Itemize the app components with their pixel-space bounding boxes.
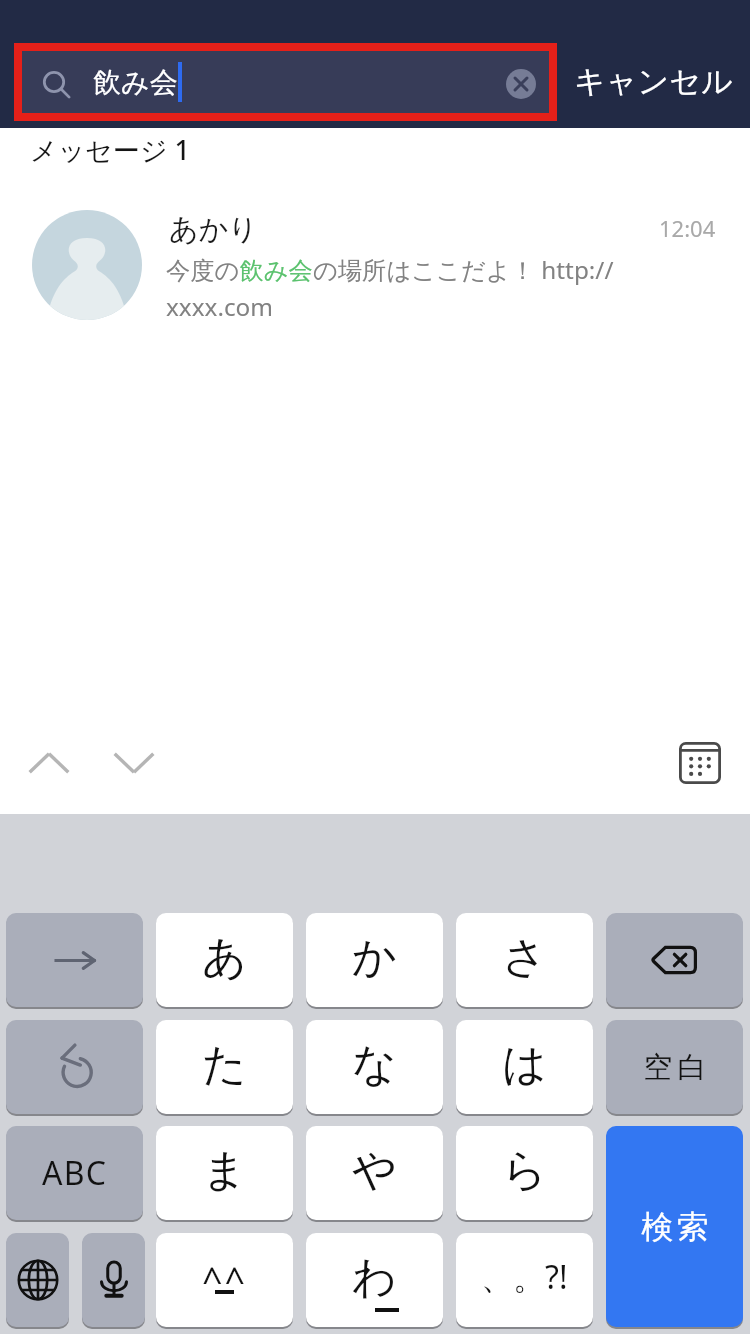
staticText: な: [352, 1037, 398, 1092]
button[interactable]: な: [306, 1020, 443, 1114]
staticText: さ: [502, 930, 548, 985]
staticText: か: [352, 930, 398, 985]
button[interactable]: Next candidate: [6, 913, 143, 1007]
staticText: ABC: [42, 1151, 108, 1195]
button[interactable]: キャンセル: [574, 62, 733, 101]
button[interactable]: Switch keyboard: [6, 1233, 69, 1327]
button[interactable]: ABC: [6, 1126, 143, 1220]
button[interactable]: あ: [156, 913, 293, 1007]
button[interactable]: 検索: [606, 1126, 743, 1327]
button[interactable]: 飲み会: [22, 51, 549, 113]
button[interactable]: Previous result: [18, 732, 80, 794]
button[interactable]: Clear search: [498, 61, 544, 107]
button[interactable]: さ: [456, 913, 593, 1007]
button[interactable]: Calendar: [671, 734, 729, 792]
button[interactable]: 空白: [606, 1020, 743, 1114]
staticText: わ: [352, 1250, 398, 1305]
button[interactable]: は: [456, 1020, 593, 1114]
staticText: ま: [202, 1143, 248, 1198]
staticText: あかり: [169, 211, 259, 248]
staticText: 12:04: [659, 213, 716, 243]
button[interactable]: あかり: [0, 190, 750, 345]
button[interactable]: 、。?!: [456, 1233, 593, 1327]
button[interactable]: Delete: [606, 913, 743, 1007]
button[interactable]: ら: [456, 1126, 593, 1220]
staticText: メッセージ 1: [30, 131, 190, 168]
staticText: た: [202, 1037, 248, 1092]
staticText: や: [352, 1143, 398, 1198]
button[interactable]: Dictation: [82, 1233, 145, 1327]
staticText: 検索: [640, 1207, 710, 1247]
staticText: ら: [502, 1143, 548, 1198]
staticText: ^^: [202, 1256, 248, 1305]
staticText: 空白: [641, 1049, 709, 1086]
button[interactable]: や: [306, 1126, 443, 1220]
button[interactable]: Next result: [103, 732, 165, 794]
button[interactable]: ^^: [156, 1233, 293, 1327]
staticText: キャンセル: [574, 62, 733, 101]
button[interactable]: た: [156, 1020, 293, 1114]
staticText: 今度の飲み会の場所はここだよ！ http://xxxx.com: [166, 253, 636, 323]
staticText: 飲み会: [93, 65, 178, 100]
button[interactable]: Undo: [6, 1020, 143, 1114]
staticText: は: [502, 1037, 548, 1092]
staticText: 、。?!: [481, 1255, 568, 1299]
staticText: あ: [202, 930, 248, 985]
button[interactable]: か: [306, 913, 443, 1007]
button[interactable]: わ: [306, 1233, 443, 1327]
button[interactable]: ま: [156, 1126, 293, 1220]
